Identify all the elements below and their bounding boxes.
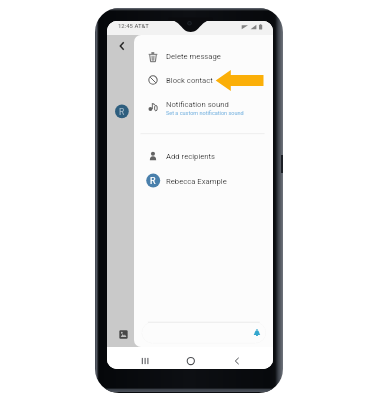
staticText: Add recipients: [166, 152, 216, 161]
button[interactable]: Back: [116, 38, 132, 54]
staticText: Rebecca Example: [166, 177, 227, 186]
staticText: R: [150, 176, 156, 187]
staticText: R: [119, 107, 125, 117]
staticText: Set a custom notification sound: [166, 110, 244, 116]
staticText: Block contact: [166, 76, 213, 85]
staticText: Delete message: [166, 52, 221, 61]
button[interactable]: [134, 96, 273, 126]
staticText: Notification sound: [166, 100, 229, 109]
button[interactable]: [134, 46, 273, 68]
button[interactable]: [134, 69, 273, 91]
button[interactable]: [134, 170, 273, 192]
staticText: 12:45 AT&T: [118, 23, 149, 30]
button[interactable]: [134, 146, 273, 168]
